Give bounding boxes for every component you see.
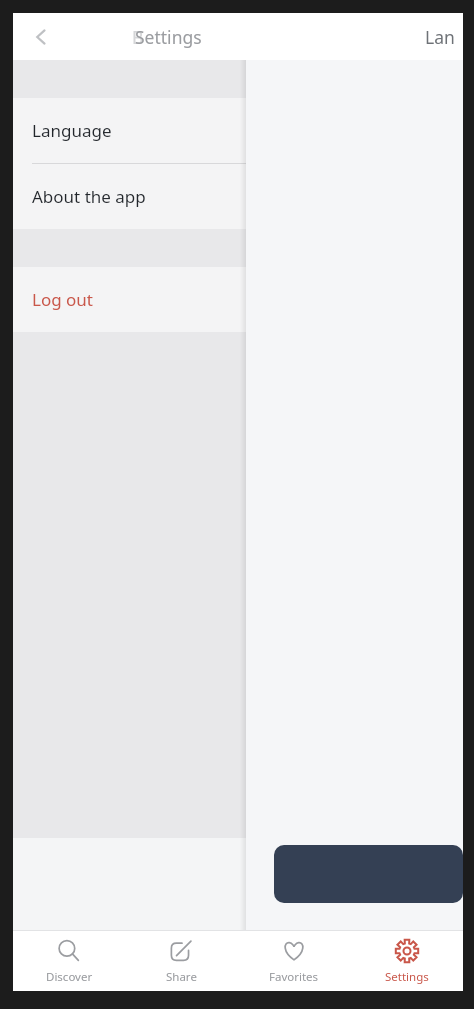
button[interactable]: Back: [17, 13, 65, 60]
button[interactable]: Discover: [13, 931, 125, 991]
button[interactable]: Save: [274, 845, 463, 903]
staticText: Discover: [46, 969, 93, 985]
staticText: Lang: [425, 25, 463, 49]
button[interactable]: Settings: [350, 931, 463, 991]
button[interactable]: Log out: [13, 267, 246, 332]
staticText: B: [132, 25, 144, 49]
staticText: Log out: [32, 288, 93, 311]
staticText: Settings: [385, 969, 429, 985]
button[interactable]: Share: [125, 931, 237, 991]
button[interactable]: About the app: [13, 164, 246, 229]
button[interactable]: Favorites: [237, 931, 350, 991]
staticText: Settings: [135, 25, 202, 49]
staticText: Share: [166, 969, 197, 985]
staticText: Language: [32, 119, 112, 142]
button[interactable]: Language: [13, 98, 246, 163]
staticText: Favorites: [269, 969, 319, 985]
staticText: About the app: [32, 185, 146, 208]
